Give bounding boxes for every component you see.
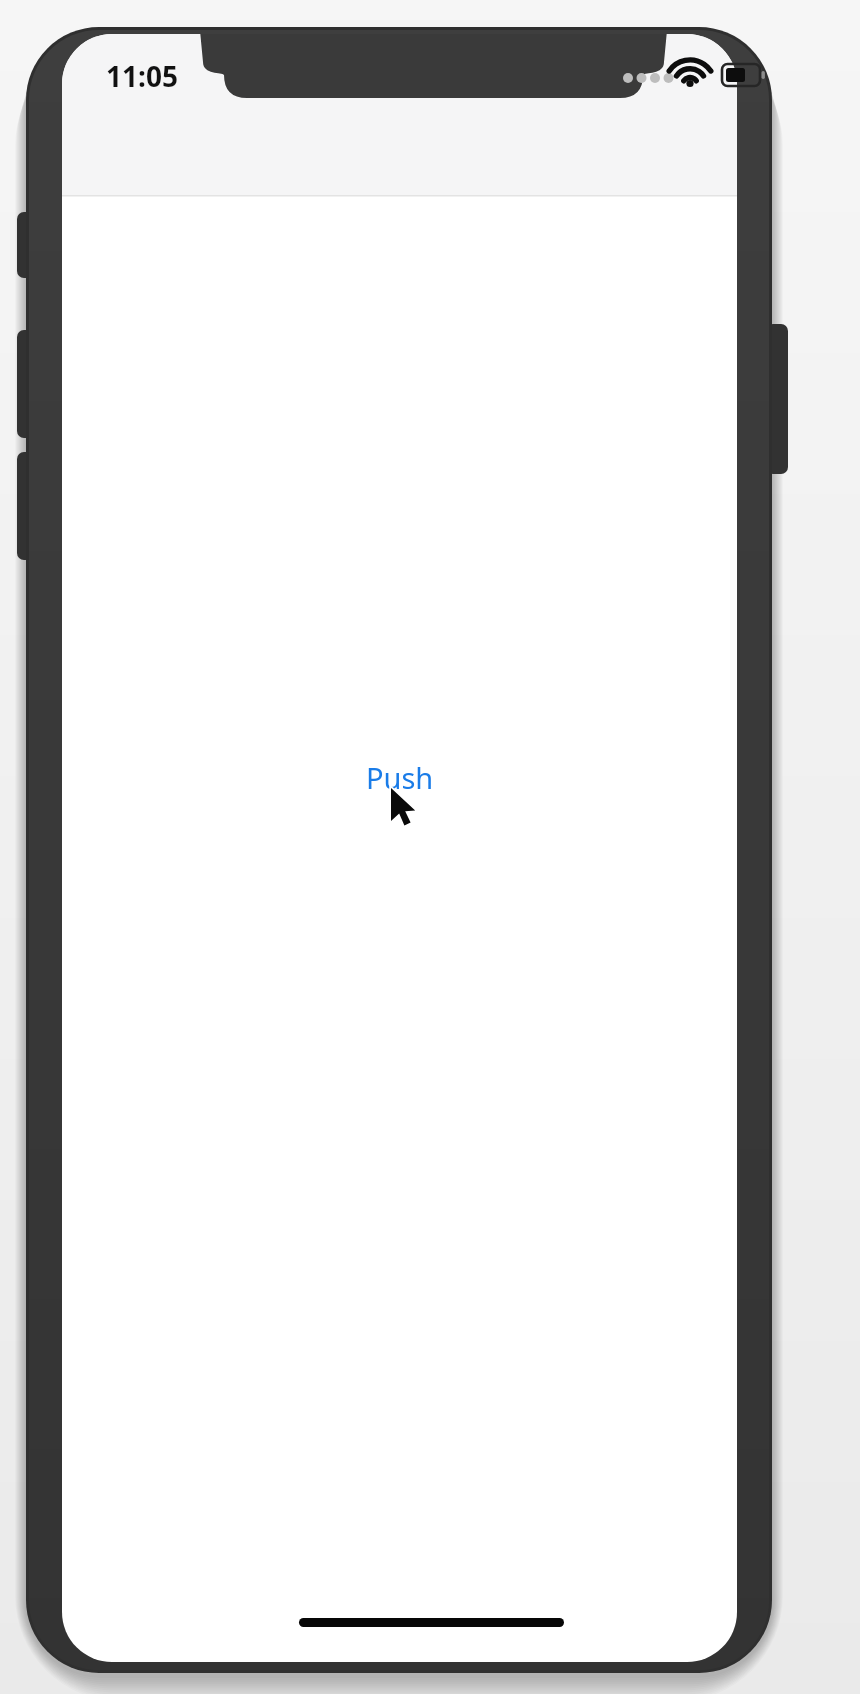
- staticText: 11:05: [106, 57, 178, 95]
- staticText: Push: [366, 758, 434, 797]
- button[interactable]: Push: [360, 754, 440, 801]
